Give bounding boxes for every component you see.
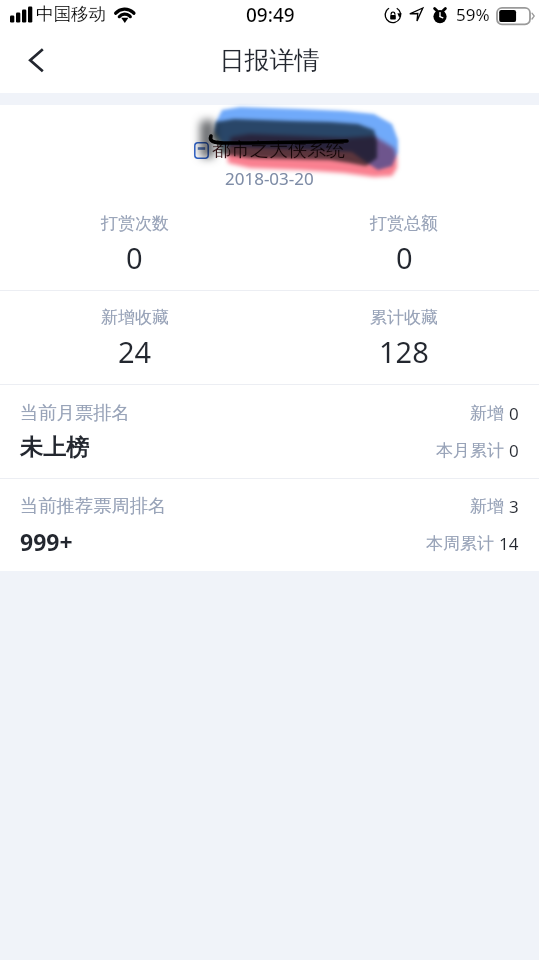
button[interactable]: 累计收藏	[269, 291, 539, 371]
staticText: 09:49	[246, 2, 295, 28]
staticText: 打赏次数	[101, 213, 169, 234]
staticText: 当前月票排名	[20, 401, 130, 424]
staticText: 当前推荐票周排名	[20, 494, 167, 517]
staticText: 0	[126, 238, 143, 277]
staticText: 打赏总额	[370, 213, 438, 234]
staticText: 新增收藏	[101, 307, 169, 328]
staticText: 999+	[20, 526, 73, 557]
staticText: 都市之大侠系统	[212, 138, 345, 162]
staticText: 未上榜	[20, 433, 89, 462]
staticText: 累计收藏	[370, 307, 438, 328]
staticText: 0	[396, 238, 413, 277]
button[interactable]: 打赏次数	[0, 197, 269, 277]
staticText: 新增	[470, 403, 504, 424]
staticText: 0	[509, 439, 519, 462]
staticText: 日报详情	[0, 45, 539, 76]
staticText: 59%	[456, 3, 490, 26]
staticText: 本周累计	[426, 533, 494, 554]
staticText: 128	[379, 332, 429, 371]
staticText: 14	[499, 532, 519, 555]
button[interactable]: Back	[0, 40, 62, 93]
button[interactable]: 当前月票排名	[0, 385, 539, 478]
button[interactable]: 新增收藏	[0, 291, 269, 371]
staticText: 新增	[470, 496, 504, 517]
button[interactable]: 当前推荐票周排名	[0, 479, 539, 571]
staticText: 3	[509, 495, 519, 518]
staticText: 2018-03-20	[225, 167, 314, 190]
staticText: 中国移动	[36, 3, 106, 25]
staticText: 本月累计	[436, 440, 504, 461]
staticText: 0	[509, 402, 519, 425]
staticText: 24	[118, 332, 152, 371]
button[interactable]: 打赏总额	[269, 197, 539, 277]
